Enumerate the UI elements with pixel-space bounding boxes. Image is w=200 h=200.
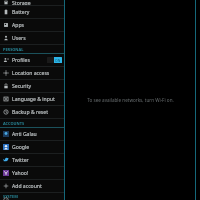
staticText: Yahoo!: [12, 170, 29, 177]
button[interactable]: Twitter account: [0, 154, 64, 166]
staticText: Profiles: [12, 57, 30, 64]
staticText: SYSTEM: [3, 194, 18, 199]
staticText: Language & input: [12, 96, 55, 103]
button[interactable]: Add account: [0, 180, 64, 192]
button[interactable]: Battery settings: [0, 6, 64, 18]
button[interactable]: Google account: [0, 141, 64, 153]
button[interactable]: Language and input settings: [0, 93, 64, 105]
button[interactable]: Security settings: [0, 80, 64, 92]
staticText: To see available networks, turn Wi-Fi on…: [87, 97, 174, 103]
staticText: Security: [12, 83, 32, 90]
button[interactable]: Apps settings: [0, 19, 64, 31]
button[interactable]: Location access settings: [0, 67, 64, 79]
button[interactable]: Anti Galau account: [0, 128, 64, 140]
staticText: Backup & reset: [12, 109, 49, 116]
staticText: Add account: [12, 183, 42, 190]
button[interactable]: Users settings: [0, 32, 64, 44]
button[interactable]: Backup and reset settings: [0, 106, 64, 118]
staticText: Location access: [12, 70, 50, 77]
staticText: Storage: [12, 0, 31, 5]
staticText: Apps: [12, 22, 24, 29]
button[interactable]: Storage: [0, 0, 64, 5]
staticText: Twitter: [12, 157, 29, 164]
button[interactable]: Profiles settings: [0, 54, 64, 66]
button[interactable]: Yahoo account: [0, 167, 64, 179]
staticText: ACCOUNTS: [3, 121, 25, 126]
staticText: Battery: [12, 9, 30, 16]
staticText: Users: [12, 35, 26, 42]
staticText: PERSONAL: [3, 47, 24, 52]
staticText: Anti Galau: [12, 131, 37, 138]
staticText: Google: [12, 144, 30, 151]
staticText: ON: [55, 58, 61, 63]
